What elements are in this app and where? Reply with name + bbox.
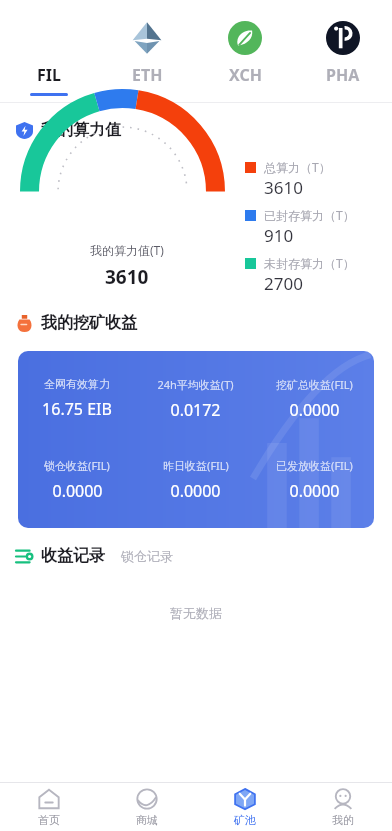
button[interactable]: 矿池 — [196, 783, 294, 831]
button[interactable]: 商城 — [98, 783, 196, 831]
staticText: ETH — [132, 64, 163, 86]
staticText: 0.0000 — [52, 480, 103, 502]
staticText: 未封存算力（T） — [264, 255, 355, 271]
staticText: 我的 — [332, 813, 354, 827]
staticText: 我的算力值(T) — [90, 242, 164, 258]
staticText: 已发放收益(FIL) — [276, 458, 353, 473]
staticText: 24h平均收益(T) — [157, 377, 234, 392]
staticText: 我的算力值 — [41, 120, 121, 140]
staticText: 0.0000 — [170, 480, 221, 502]
staticText: FIL — [37, 64, 61, 86]
button[interactable]: ETH — [98, 0, 196, 103]
button[interactable]: PHA — [294, 0, 392, 103]
staticText: XCH — [229, 64, 262, 86]
staticText: 昨日收益(FIL) — [163, 458, 229, 473]
staticText: 3610 — [264, 176, 303, 199]
staticText: 0.0000 — [289, 480, 340, 502]
staticText: 0.0000 — [289, 399, 340, 421]
staticText: 首页 — [38, 813, 60, 827]
button[interactable]: 我的 — [294, 783, 392, 831]
staticText: 全网有效算力 — [44, 377, 110, 391]
button[interactable]: 首页 — [0, 783, 98, 831]
staticText: 挖矿总收益(FIL) — [276, 377, 353, 392]
button[interactable]: XCH — [196, 0, 294, 103]
staticText: 矿池 — [234, 813, 256, 827]
staticText: 我的挖矿收益 — [41, 313, 137, 333]
button[interactable]: FIL — [0, 0, 98, 103]
staticText: 锁仓收益(FIL) — [44, 458, 110, 473]
staticText: 3610 — [105, 264, 149, 290]
button[interactable]: 收益记录 — [41, 546, 105, 566]
staticText: 暂无数据 — [170, 605, 222, 621]
button[interactable]: 锁仓记录 — [121, 548, 173, 564]
staticText: 锁仓记录 — [121, 548, 173, 564]
staticText: 0.0172 — [170, 399, 221, 421]
staticText: PHA — [326, 64, 360, 86]
staticText: 已封存算力（T） — [264, 207, 355, 223]
staticText: 总算力（T） — [264, 159, 331, 175]
staticText: 910 — [264, 224, 294, 247]
staticText: 2700 — [264, 272, 303, 294]
staticText: 商城 — [136, 813, 158, 827]
staticText: 收益记录 — [41, 546, 105, 566]
staticText: 16.75 EIB — [42, 398, 112, 420]
